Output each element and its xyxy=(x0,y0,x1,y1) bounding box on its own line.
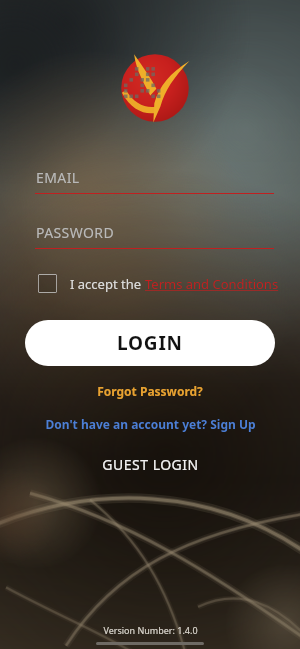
button[interactable]: PASSWORD xyxy=(35,223,274,249)
button[interactable]: GUEST LOGIN xyxy=(0,451,300,477)
staticText: I accept the xyxy=(70,275,145,293)
staticText: PASSWORD xyxy=(36,223,115,242)
staticText: Forgot Password? xyxy=(97,383,203,399)
staticText: GUEST LOGIN xyxy=(102,455,199,474)
staticText: Don't have an account yet? Sign Up xyxy=(45,416,256,432)
staticText: Version Number: 1.4.0 xyxy=(103,624,198,636)
button[interactable]: Don't have an account yet? Sign Up xyxy=(0,411,300,437)
button[interactable]: I accept the xyxy=(38,274,296,293)
button[interactable]: LOGIN xyxy=(25,320,275,366)
button[interactable]: Forgot Password? xyxy=(0,378,300,404)
button[interactable]: EMAIL xyxy=(35,168,274,194)
button[interactable]: Terms and Conditions xyxy=(145,275,279,293)
staticText: EMAIL xyxy=(36,168,80,187)
staticText: LOGIN xyxy=(117,330,183,356)
